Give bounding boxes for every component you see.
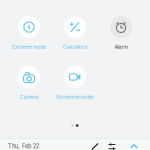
button[interactable]: Calculator bbox=[52, 16, 98, 50]
staticText: Alarm bbox=[114, 44, 127, 50]
button[interactable]: Camera bbox=[6, 66, 52, 100]
button[interactable]: Settings bbox=[106, 139, 118, 150]
staticText: Screenrecorder bbox=[56, 94, 94, 100]
staticText: Camera bbox=[19, 94, 38, 100]
button[interactable]: Extreme mode bbox=[6, 16, 52, 50]
button[interactable]: Edit bbox=[89, 139, 101, 150]
staticText: Calculator bbox=[62, 44, 87, 50]
button[interactable]: Expand bbox=[128, 139, 140, 150]
button[interactable]: Alarm bbox=[98, 16, 144, 50]
staticText: Thu, Feb 22 bbox=[8, 143, 39, 149]
staticText: Extreme mode bbox=[12, 44, 46, 50]
button[interactable]: Screenrecorder bbox=[52, 66, 98, 100]
